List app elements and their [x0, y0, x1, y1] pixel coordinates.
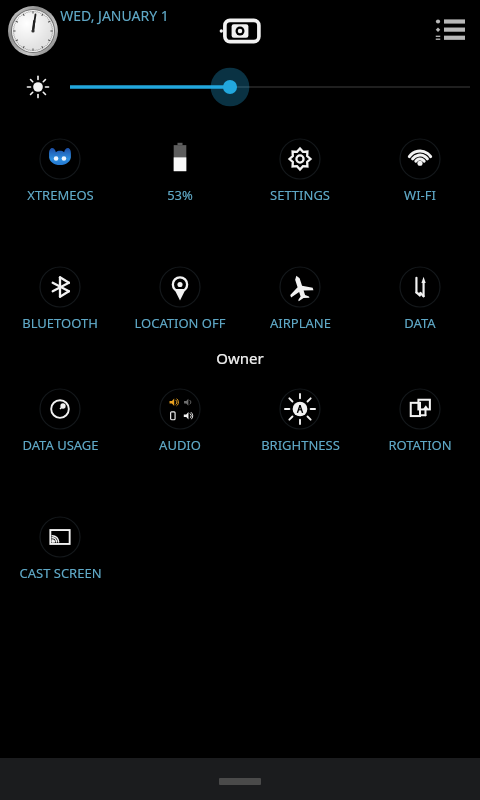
- staticText: WED, JANUARY 1: [60, 6, 169, 25]
- staticText: DATA: [404, 314, 436, 332]
- button[interactable]: DATA: [360, 262, 480, 338]
- staticText: SETTINGS: [270, 186, 330, 204]
- button[interactable]: AIRPLANE: [240, 262, 360, 338]
- staticText: XTREMEOS: [27, 186, 94, 204]
- button[interactable]: ROTATION: [360, 384, 480, 460]
- staticText: 53%: [167, 186, 193, 204]
- button[interactable]: CAST SCREEN: [0, 512, 120, 588]
- staticText: ROTATION: [388, 436, 452, 454]
- staticText: CAST SCREEN: [19, 564, 102, 582]
- button[interactable]: DATA USAGE: [0, 384, 120, 460]
- staticText: AUDIO: [159, 436, 201, 454]
- staticText: BRIGHTNESS: [261, 436, 340, 454]
- staticText: LOCATION OFF: [134, 314, 226, 332]
- button[interactable]: AUDIO: [120, 384, 240, 460]
- button[interactable]: Quick settings list: [430, 12, 470, 52]
- staticText: WI-FI: [404, 186, 436, 204]
- staticText: DATA USAGE: [22, 436, 99, 454]
- button[interactable]: BRIGHTNESS: [240, 384, 360, 460]
- button[interactable]: WED, JANUARY 1: [58, 4, 171, 27]
- staticText: BLUETOOTH: [22, 314, 98, 332]
- button[interactable]: Camera: [217, 16, 263, 46]
- button[interactable]: LOCATION OFF: [120, 262, 240, 338]
- button[interactable]: SETTINGS: [240, 134, 360, 210]
- button[interactable]: Brightness: [22, 71, 54, 103]
- staticText: Owner: [216, 348, 264, 368]
- staticText: AIRPLANE: [270, 314, 331, 332]
- button[interactable]: 53%: [120, 134, 240, 210]
- button[interactable]: Clock: [6, 4, 60, 58]
- button[interactable]: BLUETOOTH: [0, 262, 120, 338]
- button[interactable]: WI-FI: [360, 134, 480, 210]
- button[interactable]: XTREMEOS: [0, 134, 120, 210]
- button[interactable]: Brightness slider: [70, 65, 470, 109]
